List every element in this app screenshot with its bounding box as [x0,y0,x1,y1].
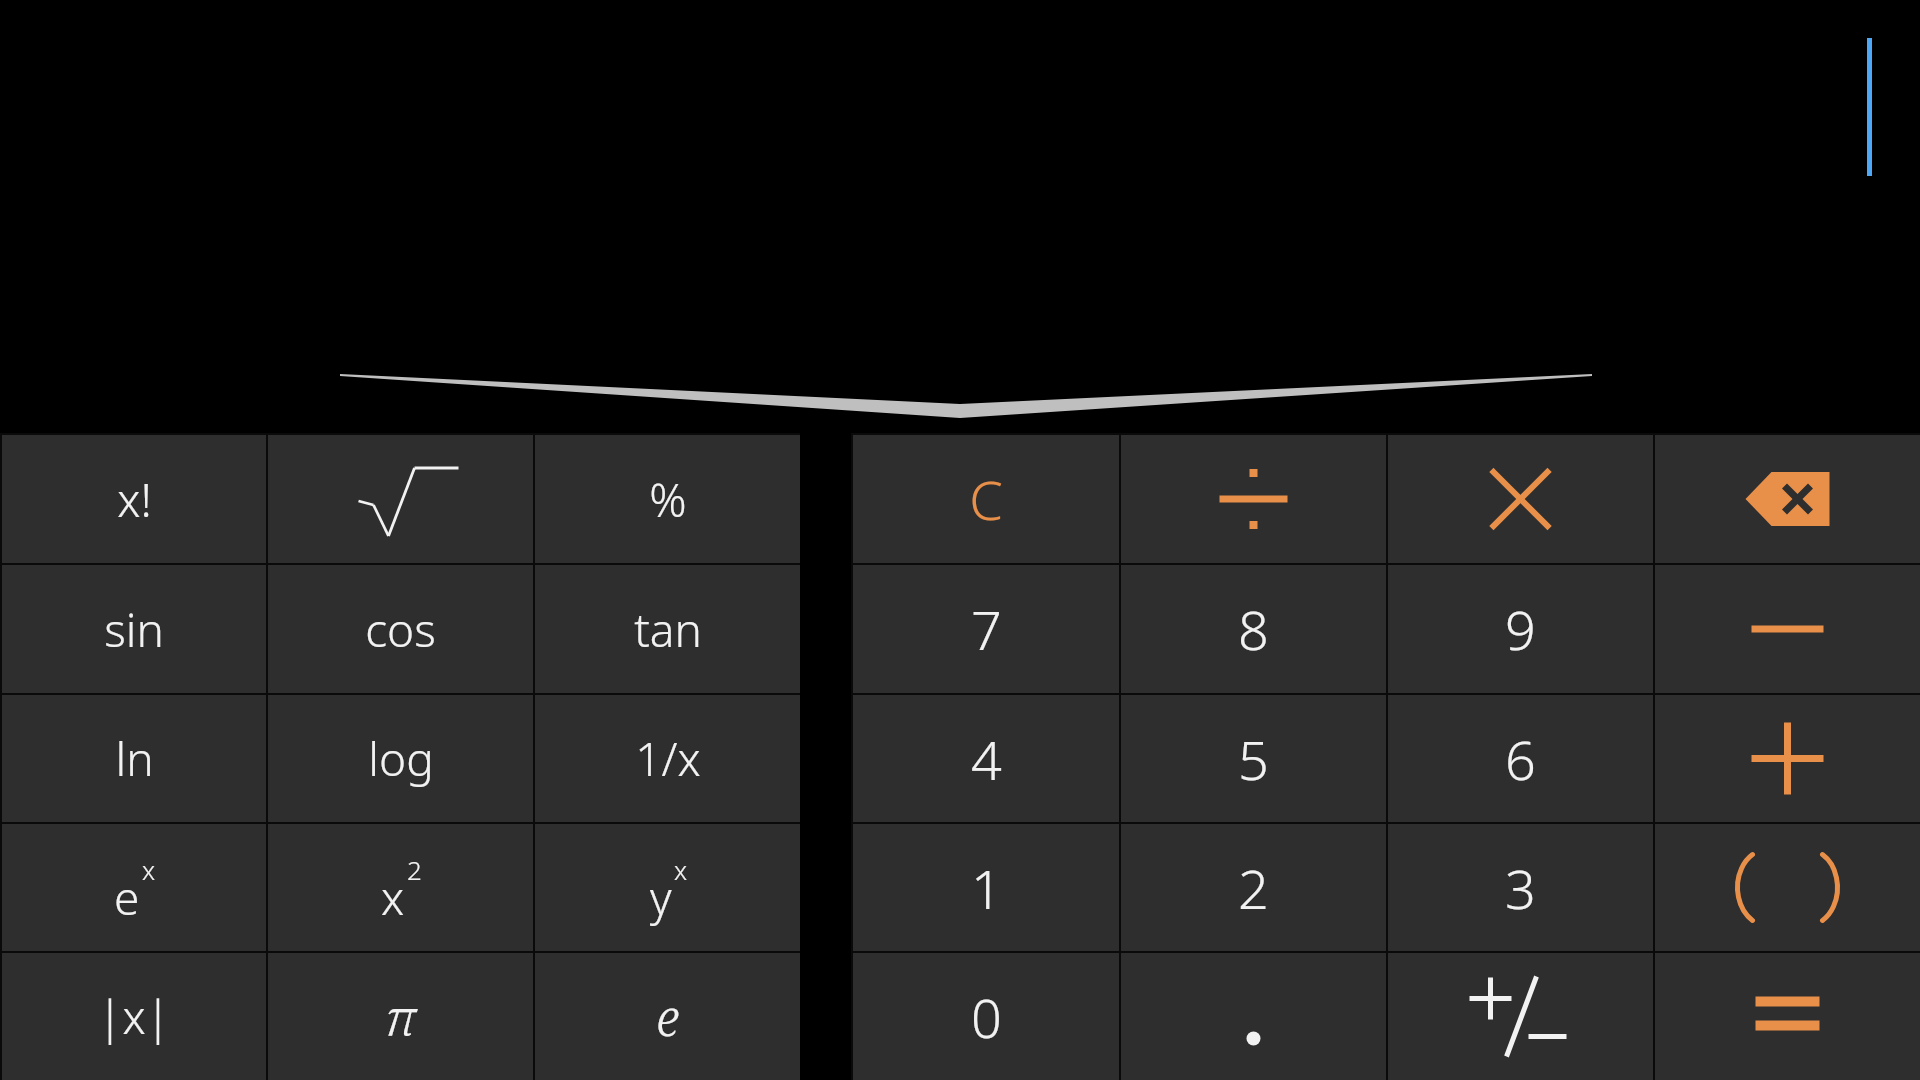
staticText: 3 [1505,851,1536,925]
staticText: y [650,866,672,929]
button[interactable]: 9 [1388,565,1653,693]
button[interactable]: y [535,824,800,951]
button[interactable]: sin [2,565,266,693]
staticText: 1 [971,851,1002,925]
button[interactable]: π [268,953,533,1080]
button[interactable]: x [268,824,533,951]
button[interactable]: x! [2,435,266,563]
staticText: % [649,468,687,531]
staticText: tan [634,598,702,661]
staticText: x! [117,468,152,531]
button[interactable]: Plus [1655,695,1920,822]
staticText: 7 [971,592,1002,666]
button[interactable]: 4 [853,695,1119,822]
button[interactable]: cos [268,565,533,693]
staticText: sin [104,598,164,661]
staticText: 4 [971,722,1002,796]
button[interactable]: 1/x [535,695,800,822]
button[interactable]: log [268,695,533,822]
staticText: e [114,866,140,929]
staticText: 2 [1238,851,1269,925]
button[interactable]: Parentheses [1655,824,1920,951]
staticText: x [381,866,405,929]
button[interactable]: |x| [2,953,266,1080]
staticText: x [142,852,156,887]
staticText: 8 [1238,592,1269,666]
button[interactable]: Equals [1655,953,1920,1080]
button[interactable]: e [2,824,266,951]
staticText: |x| [97,985,171,1048]
staticText: ln [115,727,154,790]
button[interactable]: Decimal point [1121,953,1386,1080]
button[interactable]: 2 [1121,824,1386,951]
button[interactable]: 6 [1388,695,1653,822]
staticText: π [385,983,416,1051]
button[interactable]: 0 [853,953,1119,1080]
button[interactable]: Multiply [1388,435,1653,563]
button[interactable]: tan [535,565,800,693]
button[interactable]: C [853,435,1119,563]
staticText: log [368,727,434,790]
staticText: 1/x [635,727,701,790]
button[interactable]: e [535,953,800,1080]
staticText: C [969,462,1003,536]
button[interactable]: Square root [268,435,533,563]
button[interactable]: 3 [1388,824,1653,951]
staticText: 5 [1238,722,1269,796]
staticText: e [656,983,680,1051]
staticText: 9 [1505,592,1536,666]
button[interactable]: ln [2,695,266,822]
button[interactable]: Minus [1655,565,1920,693]
staticText: 6 [1505,722,1536,796]
button[interactable]: Plus minus sign [1388,953,1653,1080]
staticText: x [674,852,688,887]
button[interactable]: 5 [1121,695,1386,822]
button[interactable]: Backspace [1655,435,1920,563]
button[interactable]: 1 [853,824,1119,951]
button[interactable]: 8 [1121,565,1386,693]
button[interactable]: Divide [1121,435,1386,563]
staticText: cos [365,598,436,661]
button[interactable]: % [535,435,800,563]
button[interactable]: 7 [853,565,1119,693]
staticText: 2 [407,852,422,887]
staticText: 0 [971,980,1002,1054]
